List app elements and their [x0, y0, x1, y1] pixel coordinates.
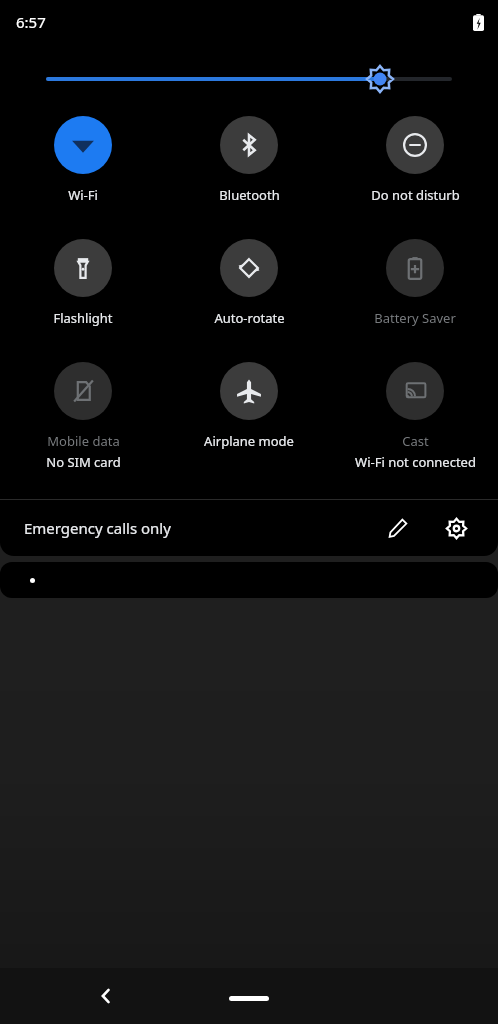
staticText: Auto-rotate: [214, 309, 285, 327]
staticText: Emergency calls only: [24, 518, 171, 538]
staticText: Wi-Fi not connected: [355, 453, 476, 471]
button[interactable]: Wi-Fi: [0, 116, 166, 204]
staticText: 6:57: [16, 12, 46, 32]
button[interactable]: Back: [88, 978, 124, 1014]
button[interactable]: Battery Saver: [332, 239, 498, 327]
button[interactable]: Home: [229, 996, 269, 1001]
staticText: No SIM card: [46, 453, 121, 471]
staticText: Airplane mode: [204, 432, 294, 450]
staticText: Wi-Fi: [68, 186, 98, 204]
staticText: Mobile data: [47, 432, 120, 450]
button[interactable]: Mobile data: [0, 362, 166, 471]
staticText: Flashlight: [53, 309, 113, 327]
button[interactable]: Do not disturb: [332, 116, 498, 204]
button[interactable]: Flashlight: [0, 239, 166, 327]
button[interactable]: Auto-rotate: [166, 239, 332, 327]
staticText: Cast: [402, 432, 429, 450]
staticText: Bluetooth: [219, 186, 280, 204]
button[interactable]: Settings: [436, 508, 476, 548]
button[interactable]: Airplane mode: [166, 362, 332, 450]
button[interactable]: Cast: [332, 362, 498, 471]
button[interactable]: Bluetooth: [166, 116, 332, 204]
staticText: Battery Saver: [374, 309, 456, 327]
button[interactable]: Edit: [378, 508, 418, 548]
staticText: Do not disturb: [371, 186, 460, 204]
